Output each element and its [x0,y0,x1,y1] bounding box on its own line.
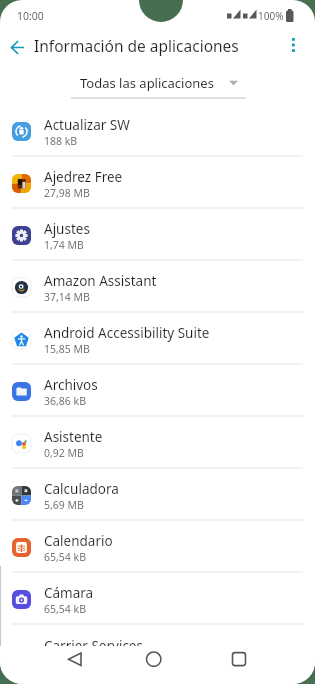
staticText: Archivos [44,376,98,394]
staticText: Android Accessibility Suite [44,324,210,342]
button[interactable]: Calculadora [0,469,315,521]
staticText: Amazon Assistant [44,272,157,290]
staticText: Asistente [44,428,103,446]
staticText: 100% [258,9,284,23]
button[interactable] [0,646,105,684]
staticText: 65,54 kB [44,550,86,564]
staticText: Información de aplicaciones [34,35,239,56]
staticText: Ajustes [44,220,90,238]
staticText: 188 kB [44,134,78,148]
staticText: 36,86 kB [44,394,86,408]
button[interactable] [4,34,30,60]
button[interactable]: Carrier Services [0,625,315,677]
button[interactable]: Actualizar SW [0,105,315,157]
button[interactable]: Ajustes [0,209,315,261]
button[interactable]: Archivos [0,365,315,417]
staticText: 27,98 MB [44,186,90,200]
staticText: 65,54 kB [44,602,86,616]
staticText: Ajedrez Free [44,168,123,186]
staticText: Calculadora [44,480,119,498]
staticText: Calendario [44,532,113,550]
button[interactable]: Asistente [0,417,315,469]
button[interactable]: Todas las aplicaciones [71,70,246,99]
button[interactable] [210,646,315,684]
staticText: 37,14 MB [44,290,90,304]
button[interactable]: Amazon Assistant [0,261,315,313]
button[interactable] [105,646,210,684]
staticText: 10:00 [17,9,44,23]
button[interactable]: Ajedrez Free [0,157,315,209]
button[interactable]: Cámara [0,573,315,625]
button[interactable]: Android Accessibility Suite [0,313,315,365]
staticText: Cámara [44,584,94,602]
staticText: Actualizar SW [44,116,130,134]
staticText: 15,85 MB [44,342,90,356]
button[interactable] [281,33,305,57]
staticText: Todas las aplicaciones [80,74,214,92]
button[interactable]: Calendario [0,521,315,573]
staticText: 1,74 MB [44,238,84,252]
staticText: 5,69 MB [44,498,84,512]
staticText: 0,92 MB [44,446,84,460]
staticText: Carrier Services [44,637,143,655]
